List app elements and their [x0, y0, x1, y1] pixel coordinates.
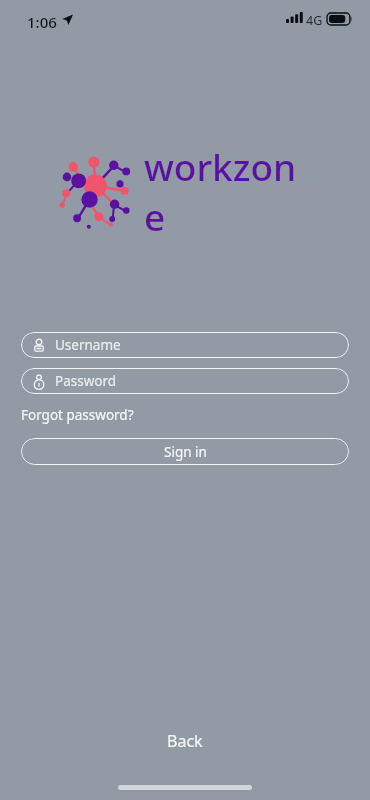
staticText: 1:06: [27, 12, 57, 32]
staticText: Username: [55, 336, 121, 354]
button[interactable]: Sign in: [21, 438, 349, 465]
button[interactable]: Password: [21, 368, 349, 394]
staticText: Sign in: [164, 443, 207, 461]
button[interactable]: Username: [21, 332, 349, 358]
staticText: Back: [167, 730, 203, 752]
button[interactable]: Forgot password?: [21, 405, 134, 425]
staticText: Password: [55, 372, 117, 390]
staticText: workzone: [144, 141, 314, 233]
button[interactable]: Back: [149, 726, 221, 756]
other: Username: [31, 338, 47, 354]
staticText: 4G: [306, 12, 323, 29]
other: Password: [31, 374, 47, 390]
staticText: Forgot password?: [21, 406, 134, 424]
